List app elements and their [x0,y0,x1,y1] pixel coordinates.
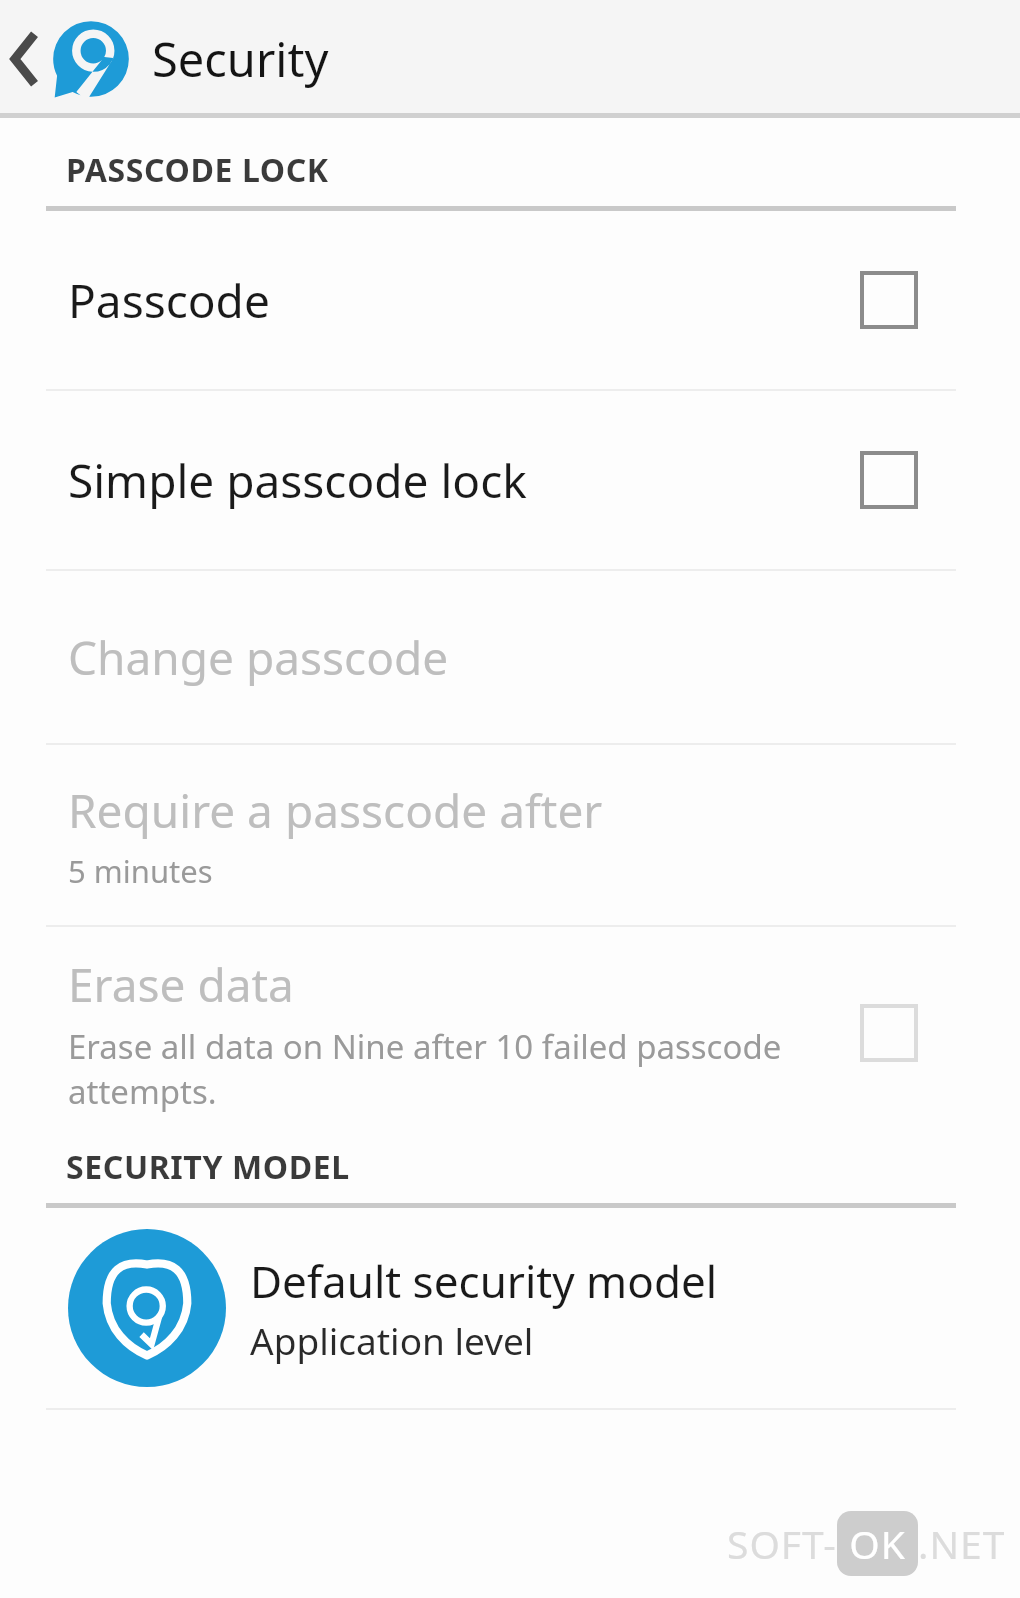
button[interactable]: Passcode [0,211,1020,389]
staticText: Erase data [68,953,294,1016]
staticText: OK [849,1517,906,1570]
staticText: Require a passcode after [68,779,603,842]
staticText: Application level [250,1315,534,1365]
button[interactable]: Change passcode [0,571,1020,743]
staticText: 5 minutes [68,850,213,892]
button[interactable]: Back to previous screen [0,0,1020,118]
staticText: SOFT- [727,1517,837,1570]
staticText: Simple passcode lock [68,449,862,512]
staticText: .NET [918,1517,1006,1570]
button[interactable]: Erase data [0,927,1020,1139]
staticText: SECURITY MODEL [66,1145,350,1189]
staticText: Default security model [250,1251,718,1311]
button[interactable]: Require a passcode after [0,745,1020,925]
staticText: Passcode [68,269,862,332]
staticText: PASSCODE LOCK [66,148,329,192]
staticText: Erase all data on Nine after 10 failed p… [68,1024,838,1114]
button[interactable]: Default security model [0,1208,1020,1408]
button[interactable]: Simple passcode lock [0,391,1020,569]
staticText: Security [152,27,329,91]
staticText: Change passcode [68,626,449,689]
